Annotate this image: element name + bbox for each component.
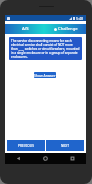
staticText: A/S bbox=[22, 26, 29, 32]
button[interactable]: Back bbox=[5, 153, 32, 164]
staticText: The service disconnecting means for each… bbox=[11, 39, 80, 59]
button[interactable]: Challenge bbox=[45, 24, 86, 34]
staticText: PREVIOUS bbox=[18, 144, 34, 148]
button[interactable]: A/S bbox=[5, 24, 45, 34]
button[interactable]: Show Answer bbox=[34, 72, 56, 78]
button[interactable]: Recent apps bbox=[59, 153, 86, 164]
button[interactable]: Home bbox=[32, 153, 59, 164]
staticText: Show Answer bbox=[34, 73, 56, 78]
staticText: NEXT bbox=[61, 144, 70, 148]
staticText: Challenge bbox=[58, 26, 78, 32]
button[interactable]: NEXT bbox=[46, 140, 84, 151]
button[interactable]: PREVIOUS bbox=[7, 140, 45, 151]
staticText: 5:48 bbox=[76, 16, 84, 21]
